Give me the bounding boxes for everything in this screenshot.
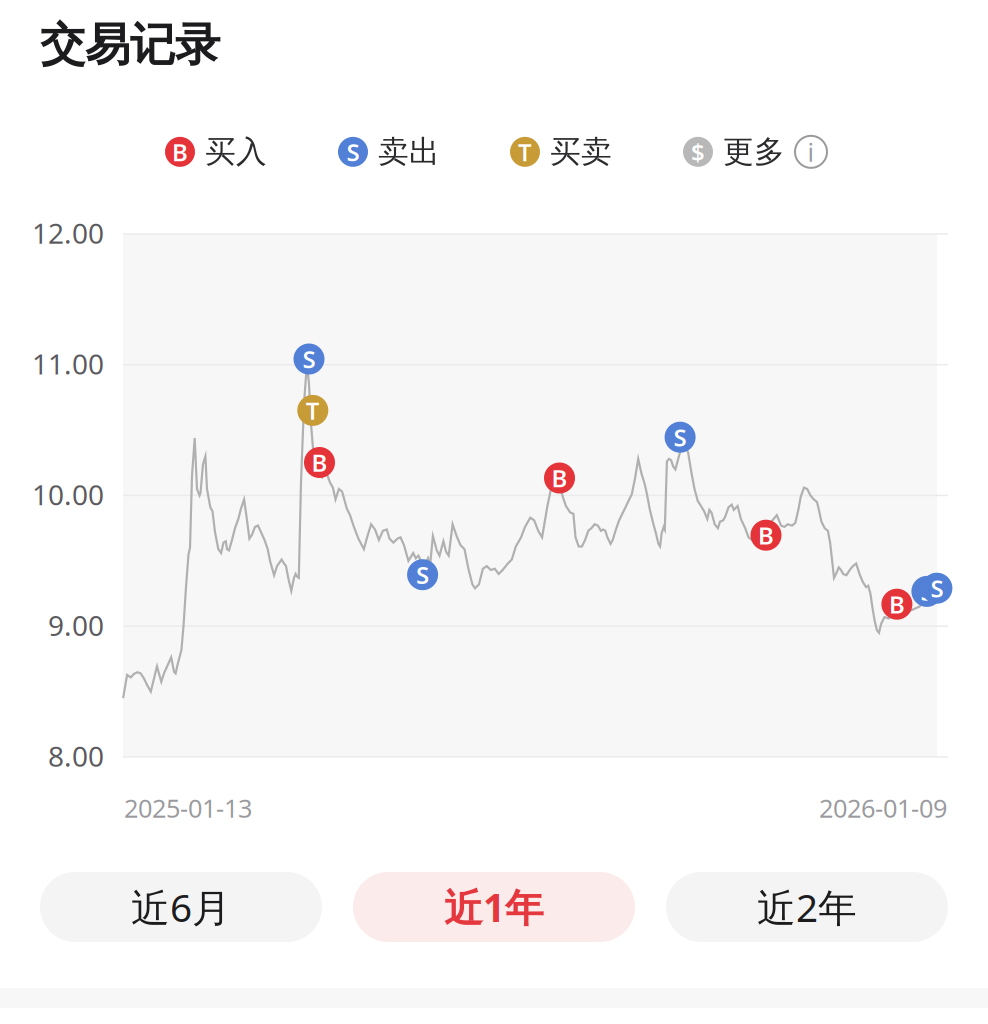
staticText: 买卖 [550, 133, 612, 171]
staticText: 10.00 [32, 476, 104, 513]
staticText: S [346, 136, 359, 168]
staticText: S [674, 421, 687, 453]
staticText: 卖出 [378, 133, 440, 171]
staticText: 交易记录 [40, 17, 220, 73]
button[interactable]: T [510, 133, 612, 171]
staticText: S [920, 575, 933, 607]
staticText: B [172, 136, 188, 168]
staticText: 2025-01-13 [124, 791, 252, 825]
staticText: S [302, 343, 315, 375]
staticText: 12.00 [32, 214, 104, 252]
button[interactable]: B [165, 133, 267, 171]
staticText: B [758, 519, 774, 551]
staticText: B [311, 447, 327, 478]
staticText: 买入 [205, 133, 267, 171]
staticText: B [551, 462, 567, 494]
button[interactable]: 近2年 [666, 872, 948, 942]
button[interactable]: 近1年 [353, 872, 635, 942]
staticText: 近6月 [131, 881, 231, 933]
staticText: 近2年 [757, 881, 857, 933]
staticText: S [416, 559, 429, 591]
staticText: B [889, 588, 905, 620]
staticText: 2026-01-09 [819, 791, 947, 825]
staticText: T [306, 394, 320, 426]
staticText: 11.00 [32, 345, 104, 382]
staticText: 9.00 [48, 607, 104, 644]
staticText: 更多 [723, 133, 785, 171]
button[interactable]: 近6月 [40, 872, 322, 942]
button[interactable]: $ [683, 133, 827, 171]
staticText: S [930, 572, 943, 604]
staticText: T [518, 136, 532, 168]
staticText: 近1年 [444, 881, 544, 933]
staticText: i [807, 135, 814, 169]
staticText: $ [691, 136, 705, 168]
staticText: 8.00 [48, 737, 104, 775]
button[interactable]: S [338, 133, 440, 171]
